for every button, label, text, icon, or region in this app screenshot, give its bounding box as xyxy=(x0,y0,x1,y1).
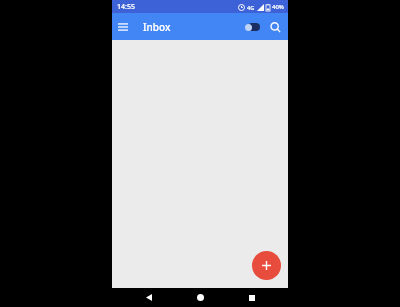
staticText: 14:55 xyxy=(117,2,135,12)
button[interactable]: Toggle xyxy=(240,16,264,38)
button[interactable]: Back xyxy=(134,288,164,307)
staticText: Inbox xyxy=(143,20,240,34)
staticText: 4G xyxy=(247,4,255,11)
button[interactable]: Search xyxy=(264,16,286,38)
staticText: 40% xyxy=(272,3,284,11)
button[interactable]: Home xyxy=(185,288,215,307)
button[interactable]: Recent apps xyxy=(237,288,267,307)
button[interactable]: Open navigation drawer xyxy=(112,16,134,38)
button[interactable]: Compose new message xyxy=(252,251,281,280)
